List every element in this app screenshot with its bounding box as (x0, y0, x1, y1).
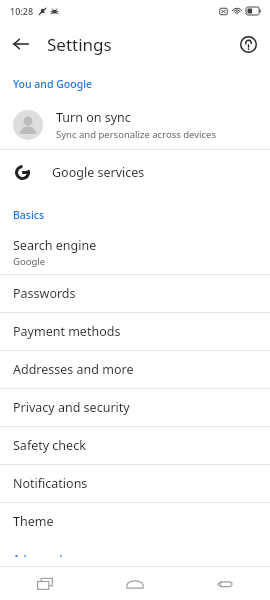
staticText: Passwords (13, 285, 76, 302)
staticText: Safety check (13, 437, 86, 454)
staticText: Addresses and more (13, 361, 134, 378)
button[interactable]: Passwords (0, 275, 270, 312)
button[interactable]: Home (90, 567, 180, 600)
staticText: Sync and personalize across devices (56, 128, 216, 141)
button[interactable]: Safety check (0, 427, 270, 464)
staticText: Google (13, 255, 46, 268)
staticText: Theme (13, 513, 54, 530)
button[interactable]: Turn on sync (0, 101, 270, 149)
button[interactable]: Back (180, 567, 270, 600)
button[interactable]: Payment methods (0, 313, 270, 350)
staticText: Notifications (13, 475, 88, 492)
staticText: Settings (47, 33, 112, 56)
button[interactable]: Addresses and more (0, 351, 270, 388)
button[interactable]: Search engine (0, 230, 270, 274)
staticText: Google services (52, 164, 145, 181)
button[interactable]: Help (233, 29, 263, 59)
staticText: Privacy and security (13, 399, 130, 416)
button[interactable]: Theme (0, 503, 270, 540)
button[interactable]: Back (6, 29, 36, 59)
button[interactable]: Recent apps (0, 567, 90, 600)
staticText: Payment methods (13, 323, 121, 340)
staticText: Basics (13, 208, 45, 222)
staticText: Advanced (13, 552, 63, 557)
button[interactable]: Privacy and security (0, 389, 270, 426)
staticText: 10:28 (10, 5, 34, 17)
button[interactable]: Google services (0, 150, 270, 194)
staticText: Turn on sync (56, 109, 131, 126)
staticText: Search engine (13, 237, 97, 254)
button[interactable]: Notifications (0, 465, 270, 502)
staticText: You and Google (13, 77, 93, 91)
